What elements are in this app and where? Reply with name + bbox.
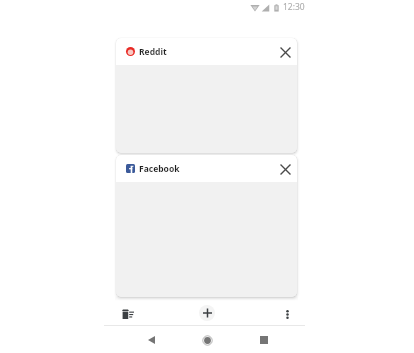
staticText: Reddit xyxy=(139,46,167,58)
button[interactable]: Facebook xyxy=(116,155,297,182)
button[interactable]: Close Reddit xyxy=(276,43,294,61)
button[interactable]: Back xyxy=(139,328,163,352)
button[interactable]: Home xyxy=(195,328,219,352)
button[interactable]: Add xyxy=(199,305,215,321)
button[interactable]: Recents xyxy=(252,328,276,352)
button[interactable]: More options xyxy=(274,301,300,327)
button[interactable]: Reddit xyxy=(116,38,297,65)
button[interactable]: Close Facebook xyxy=(276,160,294,178)
staticText: Facebook xyxy=(139,163,180,175)
staticText: 12:30 xyxy=(283,1,305,13)
button[interactable]: Clear all xyxy=(115,301,141,327)
